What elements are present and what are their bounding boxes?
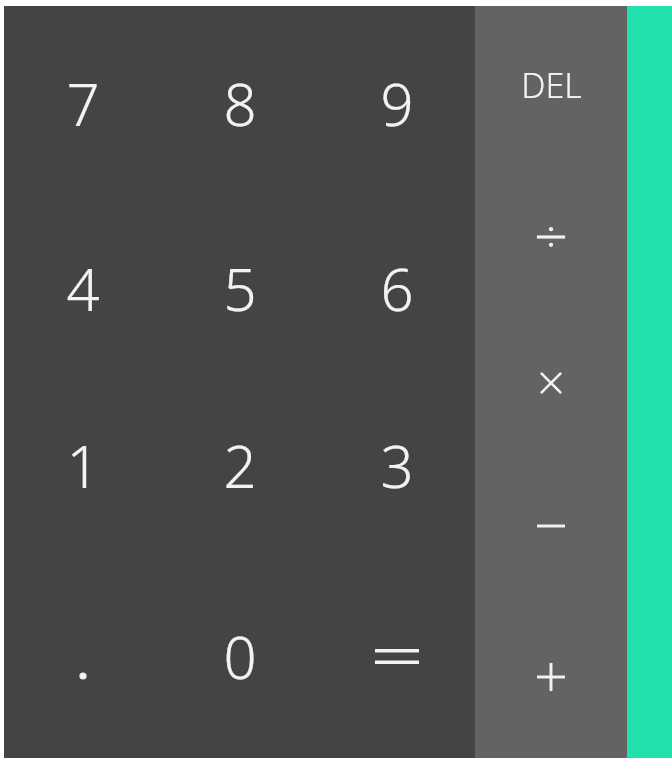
staticText: 1	[66, 426, 100, 505]
button[interactable]: DEL	[475, 6, 627, 164]
staticText: 8	[223, 64, 257, 143]
staticText: 9	[380, 64, 414, 143]
staticText: 4	[66, 249, 100, 328]
staticText: 3	[380, 426, 414, 505]
staticText: 0	[223, 617, 257, 696]
staticText: 7	[66, 64, 100, 143]
button[interactable]: 3	[318, 377, 475, 554]
button[interactable]: Equals	[318, 554, 475, 758]
staticText: DEL	[521, 62, 582, 108]
button[interactable]: 1	[4, 377, 161, 554]
button[interactable]: Multiply	[475, 310, 627, 456]
button[interactable]: Subtract	[475, 456, 627, 596]
button[interactable]: 5	[161, 200, 318, 377]
staticText: 5	[223, 249, 257, 328]
button[interactable]: 0	[161, 554, 318, 758]
button[interactable]: 2	[161, 377, 318, 554]
staticText: 2	[223, 426, 257, 505]
button[interactable]: Add	[475, 596, 627, 758]
staticText: 6	[380, 249, 414, 328]
button[interactable]: 4	[4, 200, 161, 377]
button[interactable]: 8	[161, 6, 318, 200]
button[interactable]: Decimal point	[4, 554, 161, 758]
button[interactable]: 9	[318, 6, 475, 200]
button[interactable]: Divide	[475, 164, 627, 310]
button[interactable]: 7	[4, 6, 161, 200]
button[interactable]: 6	[318, 200, 475, 377]
